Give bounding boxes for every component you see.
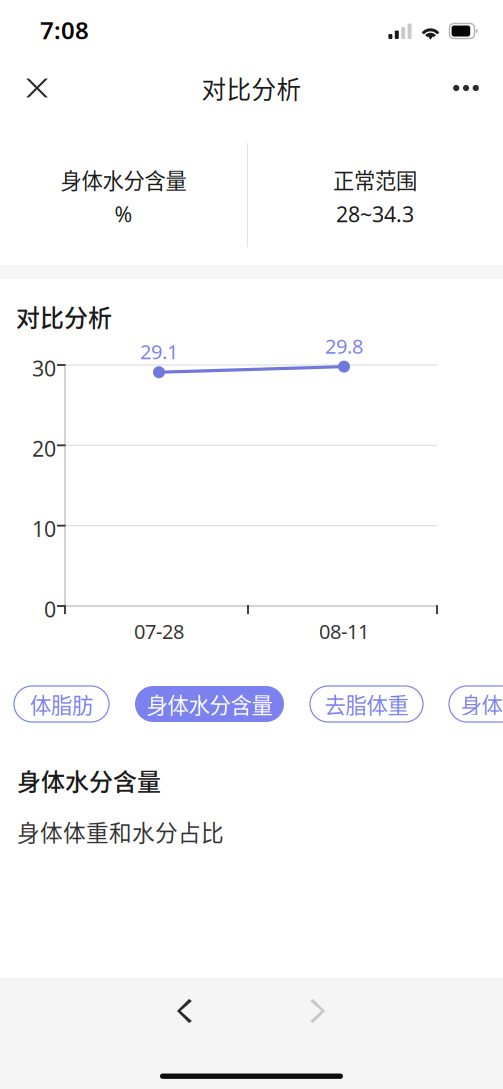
- staticText: 对比分析: [16, 299, 112, 334]
- button[interactable]: 身体水分含量: [449, 686, 503, 722]
- staticText: 身体体重和水分占比: [17, 815, 224, 848]
- staticText: 身体水分含量: [460, 689, 503, 719]
- staticText: 07-28: [134, 618, 184, 645]
- button[interactable]: 体脂肪: [14, 686, 109, 722]
- button[interactable]: Forward: [290, 985, 350, 1037]
- staticText: 7:08: [40, 14, 89, 46]
- staticText: 对比分析: [201, 70, 301, 106]
- staticText: 正常范围: [333, 164, 417, 195]
- staticText: 10: [32, 515, 56, 543]
- staticText: 08-11: [319, 618, 369, 645]
- button[interactable]: 身体水分含量: [135, 686, 284, 722]
- staticText: 30: [32, 354, 56, 382]
- button[interactable]: Close: [15, 66, 59, 110]
- staticText: %: [114, 200, 132, 228]
- staticText: 体脂肪: [30, 689, 93, 719]
- button[interactable]: More options: [444, 66, 488, 110]
- staticText: 身体水分含量: [60, 164, 186, 195]
- staticText: 29.1: [140, 338, 178, 365]
- staticText: 去脂体重: [324, 689, 408, 719]
- staticText: 28~34.3: [336, 200, 414, 228]
- staticText: 20: [32, 434, 56, 463]
- staticText: 29.8: [325, 333, 363, 359]
- button[interactable]: Back: [154, 985, 214, 1037]
- staticText: 身体水分含量: [17, 763, 161, 798]
- button[interactable]: 去脂体重: [310, 686, 423, 722]
- staticText: 身体水分含量: [146, 689, 272, 719]
- staticText: 0: [44, 595, 56, 623]
